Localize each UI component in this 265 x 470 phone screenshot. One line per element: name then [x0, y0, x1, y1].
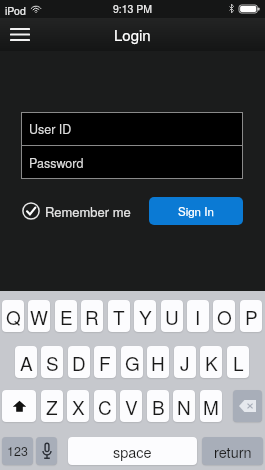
button[interactable]: T: [108, 300, 130, 332]
staticText: G: [125, 349, 140, 376]
button[interactable]: Shift: [2, 390, 36, 422]
button[interactable]: F: [94, 346, 116, 378]
staticText: 123: [7, 442, 28, 460]
staticText: J: [180, 349, 190, 376]
button[interactable]: Dictation: [36, 437, 57, 465]
button[interactable]: return: [202, 437, 263, 465]
button[interactable]: M: [200, 390, 222, 422]
button[interactable]: X: [67, 390, 89, 422]
staticText: U: [165, 303, 179, 330]
staticText: L: [233, 349, 244, 376]
staticText: Z: [46, 393, 58, 420]
button[interactable]: L: [227, 346, 249, 378]
staticText: D: [72, 349, 86, 376]
button[interactable]: Y: [134, 300, 156, 332]
staticText: return: [214, 441, 252, 462]
staticText: Remember me: [45, 202, 131, 221]
staticText: K: [205, 349, 218, 376]
staticText: space: [113, 441, 152, 462]
button[interactable]: Z: [41, 390, 63, 422]
button[interactable]: Menu: [0, 18, 40, 51]
button[interactable]: K: [200, 346, 222, 378]
button[interactable]: G: [121, 346, 143, 378]
button[interactable]: W: [28, 300, 50, 332]
staticText: Login: [114, 24, 151, 45]
button[interactable]: Remember me: [22, 200, 131, 222]
staticText: User ID: [29, 120, 72, 138]
button[interactable]: Q: [2, 300, 24, 332]
staticText: iPod: [5, 3, 26, 18]
staticText: B: [152, 393, 165, 420]
button[interactable]: U: [161, 300, 183, 332]
staticText: Password: [29, 154, 84, 172]
staticText: 9:13 PM: [113, 1, 153, 16]
button[interactable]: P: [240, 300, 262, 332]
staticText: H: [151, 349, 165, 376]
button[interactable]: Sign In: [149, 197, 243, 225]
button[interactable]: E: [55, 300, 77, 332]
staticText: S: [46, 349, 59, 376]
button[interactable]: Backspace: [233, 390, 262, 422]
button[interactable]: N: [173, 390, 195, 422]
button[interactable]: V: [120, 390, 142, 422]
button[interactable]: S: [41, 346, 63, 378]
button[interactable]: J: [174, 346, 196, 378]
button[interactable]: O: [213, 300, 235, 332]
button[interactable]: R: [81, 300, 103, 332]
staticText: P: [245, 303, 258, 330]
staticText: N: [177, 393, 191, 420]
button[interactable]: H: [147, 346, 169, 378]
staticText: X: [72, 393, 85, 420]
button[interactable]: B: [147, 390, 169, 422]
staticText: T: [113, 303, 125, 330]
button[interactable]: C: [94, 390, 116, 422]
button[interactable]: D: [68, 346, 90, 378]
button[interactable]: Password: [21, 146, 243, 179]
staticText: I: [195, 303, 201, 330]
button[interactable]: A: [15, 346, 37, 378]
staticText: Sign In: [178, 203, 214, 219]
staticText: W: [30, 303, 48, 330]
button[interactable]: I: [187, 300, 209, 332]
button[interactable]: Numbers: [2, 437, 33, 465]
staticText: M: [203, 393, 219, 420]
staticText: R: [85, 303, 99, 330]
staticText: Y: [139, 303, 152, 330]
button[interactable]: User ID: [21, 112, 243, 145]
staticText: E: [60, 303, 73, 330]
staticText: Q: [6, 303, 21, 330]
staticText: O: [217, 303, 232, 330]
staticText: C: [98, 393, 112, 420]
button[interactable]: space: [68, 437, 197, 465]
staticText: V: [125, 393, 138, 420]
staticText: A: [20, 349, 33, 376]
staticText: F: [99, 349, 111, 376]
